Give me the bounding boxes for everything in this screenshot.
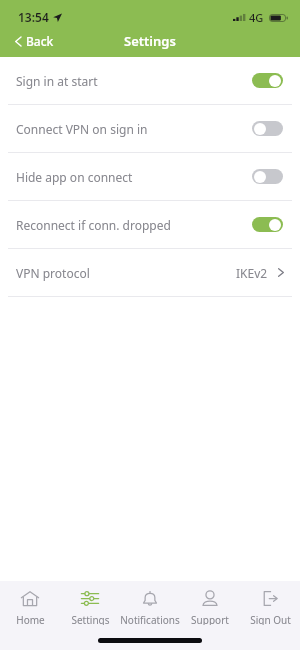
staticText: Settings: [124, 32, 176, 50]
staticText: Notifications: [120, 613, 180, 625]
staticText: Sign in at start: [16, 73, 98, 89]
button[interactable]: Reconnect if conn. dropped: [0, 201, 300, 248]
button[interactable]: Sign in at start: [0, 57, 300, 104]
staticText: Connect VPN on sign in: [16, 121, 148, 137]
button[interactable]: Back: [11, 30, 58, 52]
button[interactable]: Switch off: [252, 121, 283, 136]
button[interactable]: Hide app on connect: [0, 153, 300, 200]
staticText: VPN protocol: [16, 265, 90, 281]
staticText: Sign Out: [250, 613, 291, 625]
staticText: Support: [191, 613, 229, 625]
staticText: Settings: [71, 613, 110, 625]
button[interactable]: Sign Out: [240, 581, 300, 625]
staticText: 4G: [249, 10, 264, 25]
staticText: Back: [26, 33, 54, 49]
staticText: Hide app on connect: [16, 169, 133, 185]
button[interactable]: Settings: [60, 581, 120, 625]
button[interactable]: Notifications: [120, 581, 180, 625]
staticText: Reconnect if conn. dropped: [16, 217, 171, 233]
button[interactable]: Connect VPN on sign in: [0, 105, 300, 152]
button[interactable]: Home: [0, 581, 60, 625]
button[interactable]: Support: [180, 581, 240, 625]
button[interactable]: Switch off: [252, 169, 283, 184]
staticText: IKEv2: [236, 265, 268, 281]
button[interactable]: Switch on: [252, 217, 283, 232]
staticText: 13:54: [18, 9, 49, 25]
button[interactable]: VPN protocol: [0, 249, 300, 296]
staticText: Home: [16, 613, 45, 625]
button[interactable]: Switch on: [252, 73, 283, 88]
